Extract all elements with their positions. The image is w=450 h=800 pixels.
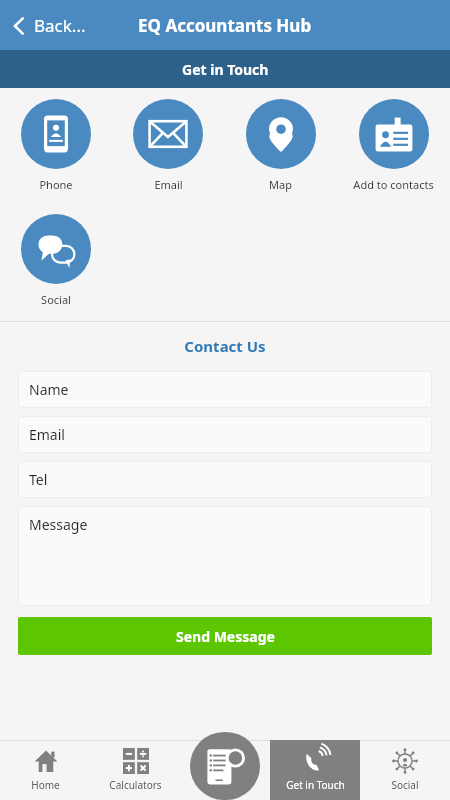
other: Social [21,214,91,284]
other: Map [246,99,316,169]
staticText: Phone [39,177,73,192]
staticText: Name [29,380,69,399]
button[interactable]: Send Message [18,617,432,655]
button[interactable]: Message [18,506,432,606]
staticText: Home [31,778,60,792]
staticText: Email [29,425,65,444]
staticText: Add to contacts [353,177,434,192]
button[interactable]: Name [18,371,432,408]
staticText: Message [29,515,88,534]
staticText: Social [41,292,71,307]
button[interactable]: Home [0,740,90,800]
button[interactable]: Calculators [90,740,180,800]
staticText: Tel [29,470,48,489]
button[interactable]: Tools [180,740,270,800]
button[interactable]: Social [0,212,112,309]
staticText: Calculators [109,778,162,792]
staticText: Get in Touch [182,60,269,79]
staticText: Send Message [176,627,275,646]
other: Phone [21,99,91,169]
button[interactable]: Map [224,97,337,194]
staticText: EQ Accountants Hub [138,14,312,37]
staticText: Tools [213,778,238,792]
button[interactable]: Phone [0,97,112,194]
button[interactable]: Add to contacts [337,97,450,194]
button[interactable]: Get in Touch [270,740,360,800]
other: Add to contacts [359,99,429,169]
button[interactable]: Email [112,97,224,194]
staticText: Social [391,778,419,792]
staticText: Contact Us [18,336,432,356]
button[interactable]: Social [360,740,450,800]
staticText: Email [154,177,183,192]
other: Email [133,99,203,169]
button[interactable]: Tools [190,732,260,800]
button[interactable]: Email [18,416,432,453]
staticText: Get in Touch [286,778,345,792]
button[interactable]: Tel [18,461,432,498]
staticText: Map [269,177,292,192]
staticText: Back... [34,14,86,37]
button[interactable]: Back... [8,10,90,41]
